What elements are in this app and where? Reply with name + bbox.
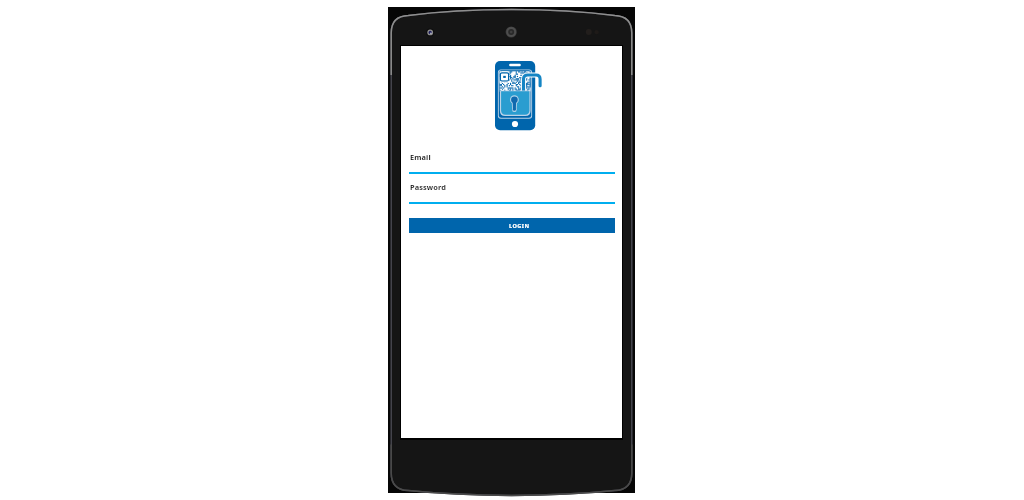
other: App logo: secure QR phone lock (495, 61, 544, 131)
button[interactable]: Email (409, 150, 615, 174)
staticText: Password (410, 182, 447, 192)
button[interactable]: LOGIN (409, 218, 615, 233)
staticText: Email (410, 152, 431, 162)
button[interactable]: Password (409, 180, 615, 204)
staticText: LOGIN (509, 222, 530, 230)
